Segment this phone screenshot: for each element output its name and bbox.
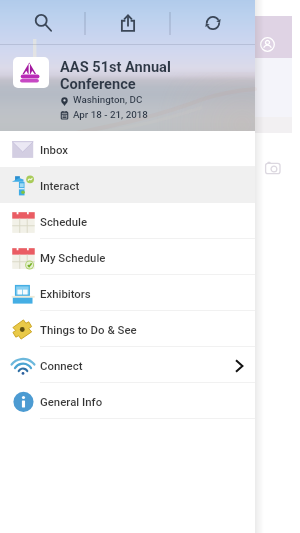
button[interactable]: Refresh — [170, 0, 255, 44]
staticText: Conference — [60, 75, 136, 92]
button[interactable]: Exhibitors — [0, 275, 255, 311]
staticText: Connect — [40, 359, 83, 372]
staticText: Things to Do & See — [40, 323, 137, 336]
staticText: Schedule — [40, 215, 88, 228]
button[interactable]: Search — [0, 0, 85, 44]
button[interactable]: Inbox — [0, 131, 255, 167]
button[interactable]: Interact — [0, 167, 255, 203]
staticText: General Info — [40, 395, 103, 408]
button[interactable]: Share — [85, 0, 170, 44]
button[interactable]: Connect — [0, 347, 255, 383]
staticText: Exhibitors — [40, 287, 91, 300]
button[interactable]: General Info — [0, 383, 255, 419]
staticText: Apr 18 - 21, 2018 — [73, 109, 148, 120]
button[interactable]: Things to Do & See — [0, 311, 255, 347]
button[interactable]: Schedule — [0, 203, 255, 239]
staticText: AAS 51st Annual — [60, 58, 171, 75]
staticText: Inbox — [40, 143, 69, 156]
staticText: My Schedule — [40, 251, 106, 264]
button[interactable]: My Schedule — [0, 239, 255, 275]
staticText: Washington, DC — [73, 94, 143, 105]
staticText: Interact — [40, 179, 80, 192]
